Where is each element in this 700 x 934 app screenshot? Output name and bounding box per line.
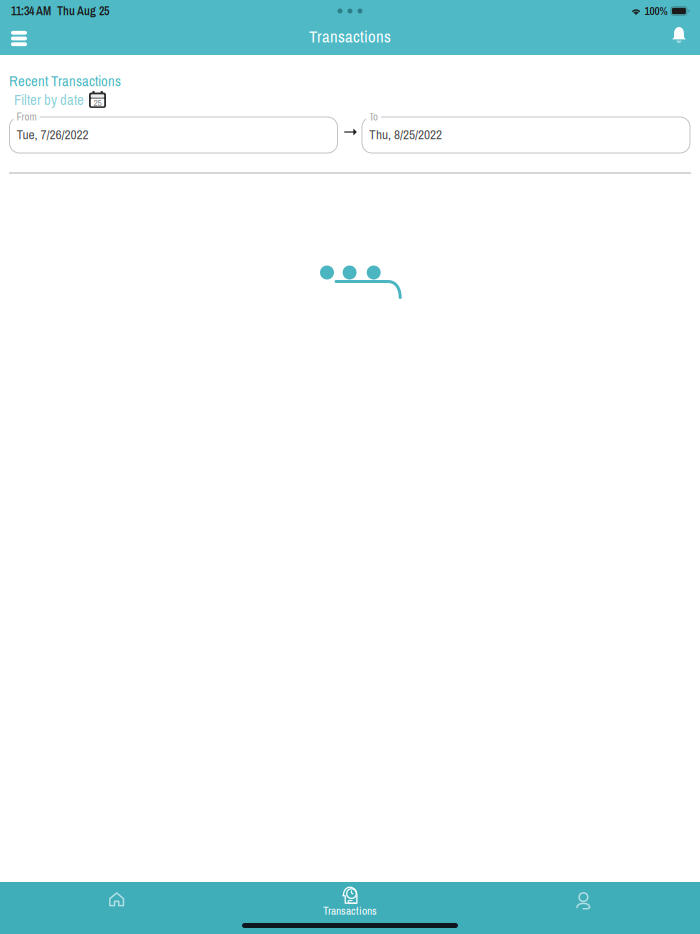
button[interactable]: Notifications [660, 22, 698, 55]
button[interactable]: Menu [0, 22, 38, 55]
staticText: From [16, 109, 36, 124]
staticText: Transactions [309, 25, 391, 48]
button[interactable]: Transactions [233, 882, 467, 934]
staticText: Tue, 7/26/2022 [16, 125, 88, 143]
staticText: Recent Transactions [9, 71, 121, 91]
button[interactable]: To [361, 110, 690, 153]
staticText: 25 [93, 96, 101, 109]
staticText: Thu, 8/25/2022 [369, 125, 442, 143]
staticText: To [369, 109, 378, 124]
button[interactable]: Home [0, 882, 233, 934]
staticText: Thu Aug 25 [57, 3, 109, 19]
button[interactable]: Profile [467, 879, 700, 931]
staticText: Filter by date [14, 90, 84, 110]
button[interactable]: From [9, 110, 338, 153]
staticText: Transactions [323, 903, 377, 918]
staticText: 100% [644, 3, 667, 19]
staticText: 11:34 AM [11, 3, 51, 19]
